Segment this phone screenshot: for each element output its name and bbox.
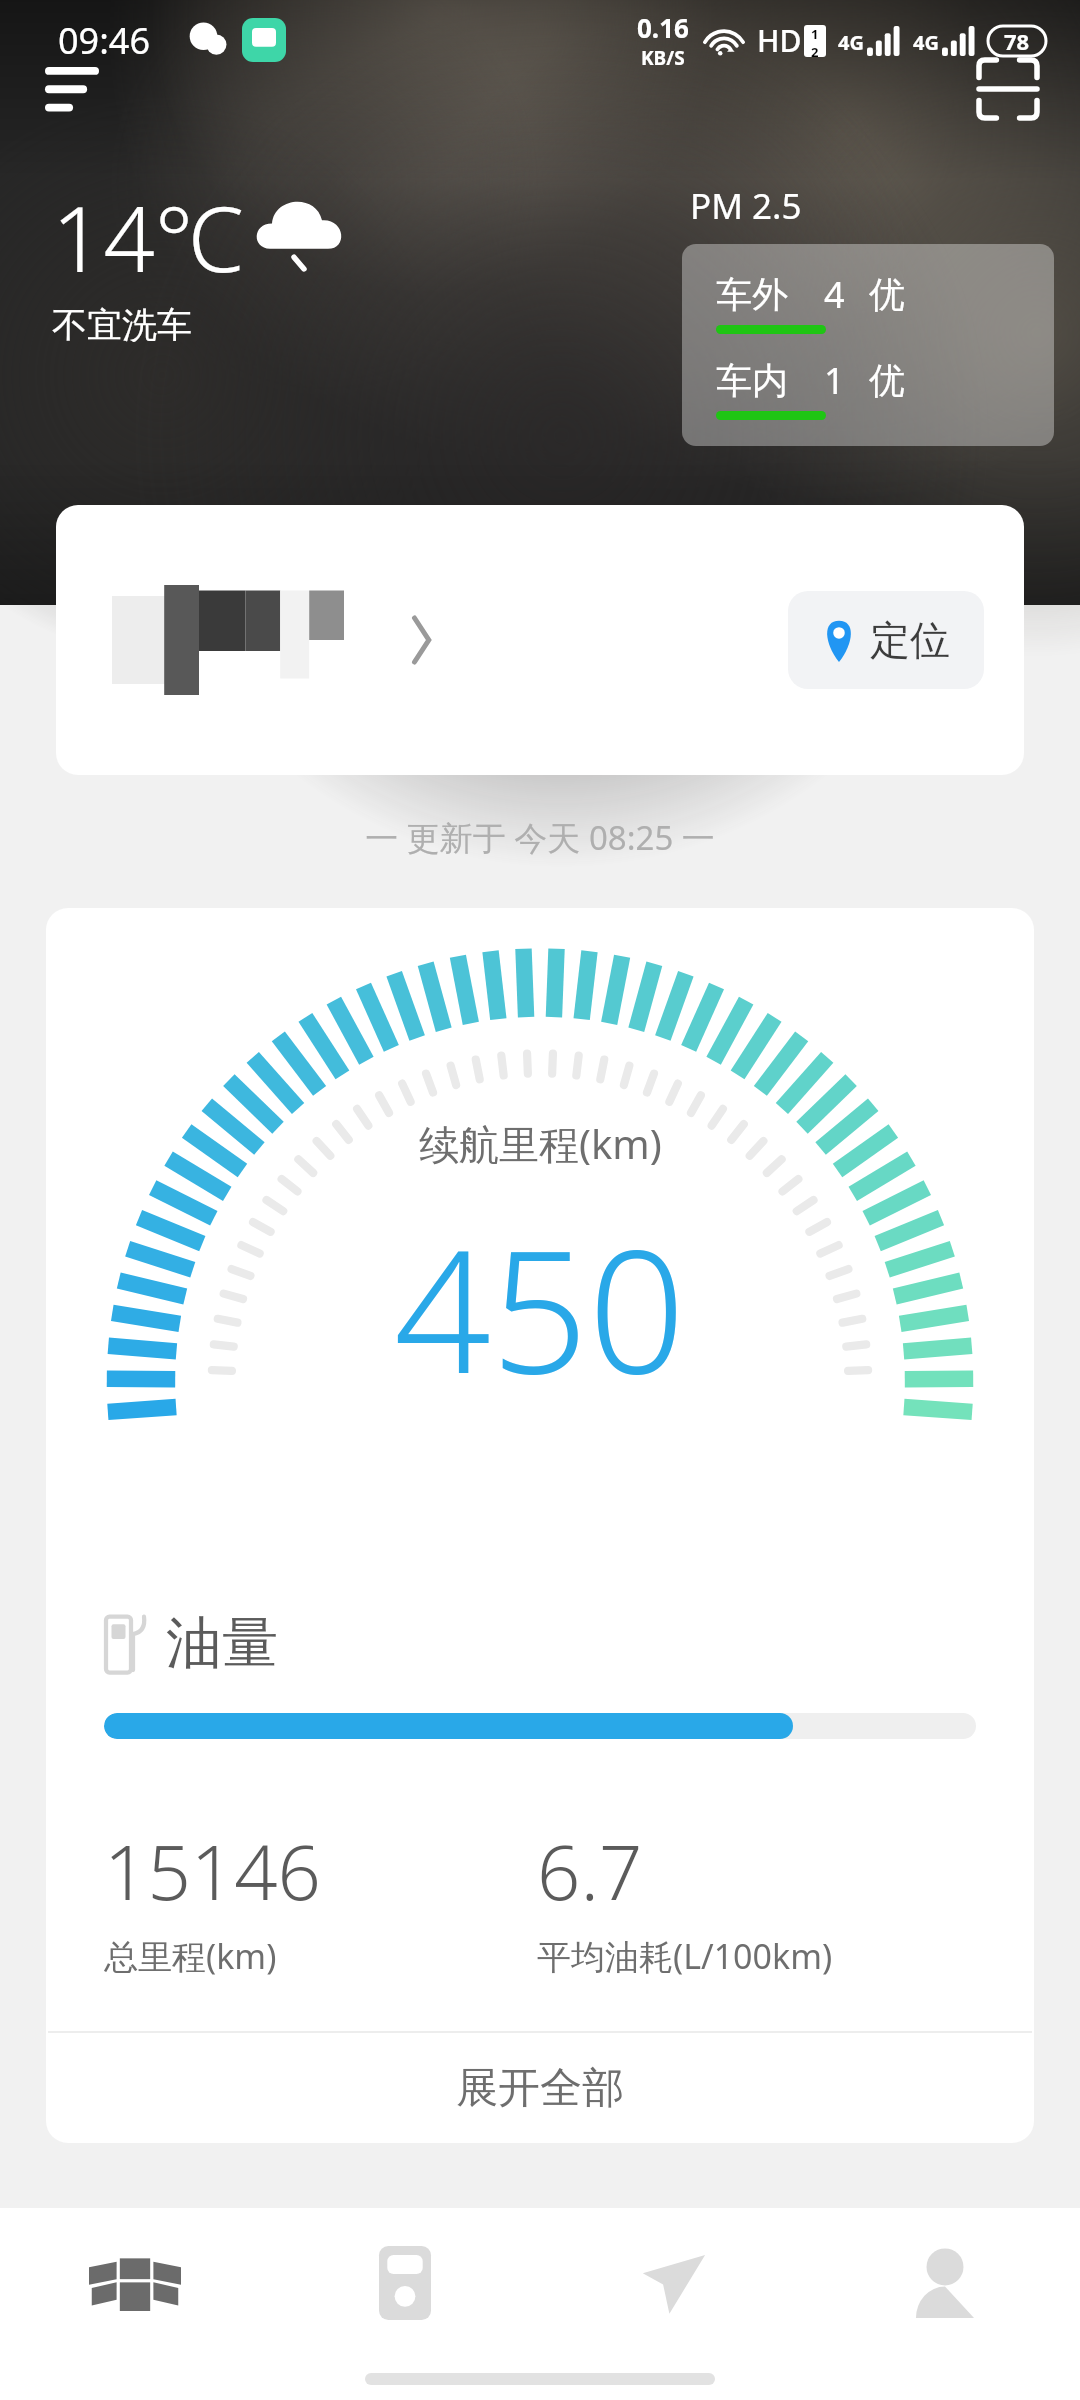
button[interactable]: Remote [270,2208,540,2358]
staticText: 6.7 [537,1819,643,1923]
staticText: 4G [838,29,864,56]
button[interactable]: 定位 [56,505,1024,775]
button[interactable]: 定位 [822,615,950,665]
button[interactable]: Scan QR code [966,47,1050,131]
staticText: 78 [1004,26,1030,56]
staticText: 15146 [104,1819,321,1923]
staticText: 车外 [716,272,788,317]
staticText: 优 [869,358,905,403]
staticText: 1 [824,356,845,405]
staticText: HD [757,20,802,61]
staticText: 14℃ [52,176,244,299]
staticText: 2 [811,43,819,57]
button[interactable]: Menu [30,47,114,131]
button[interactable]: Vehicle [0,2208,270,2358]
staticText: 不宜洗车 [52,303,192,347]
staticText: 4G [913,29,939,56]
staticText: 平均油耗(L/100km) [537,1933,833,1979]
staticText: 车内 [716,358,788,403]
button[interactable]: 车外 [716,270,1020,420]
button[interactable]: Profile [810,2208,1080,2358]
staticText: 优 [869,272,905,317]
staticText: 09:46 [58,16,151,65]
button[interactable]: 展开全部 [46,2033,1034,2143]
staticText: 定位 [870,615,950,665]
staticText: 4 [824,270,845,319]
staticText: 总里程(km) [104,1933,277,1979]
staticText: 1 [811,25,819,43]
staticText: PM 2.5 [690,182,802,230]
staticText: 展开全部 [456,2062,624,2115]
staticText: 450 [394,1191,686,1423]
staticText: 续航里程(km) [419,1116,662,1171]
button[interactable]: Navigation [540,2208,810,2358]
staticText: KB/S [641,45,685,71]
staticText: 0.16 [637,10,689,45]
staticText: 一 更新于 今天 08:25 一 [0,815,1080,860]
staticText: 油量 [166,1608,278,1679]
